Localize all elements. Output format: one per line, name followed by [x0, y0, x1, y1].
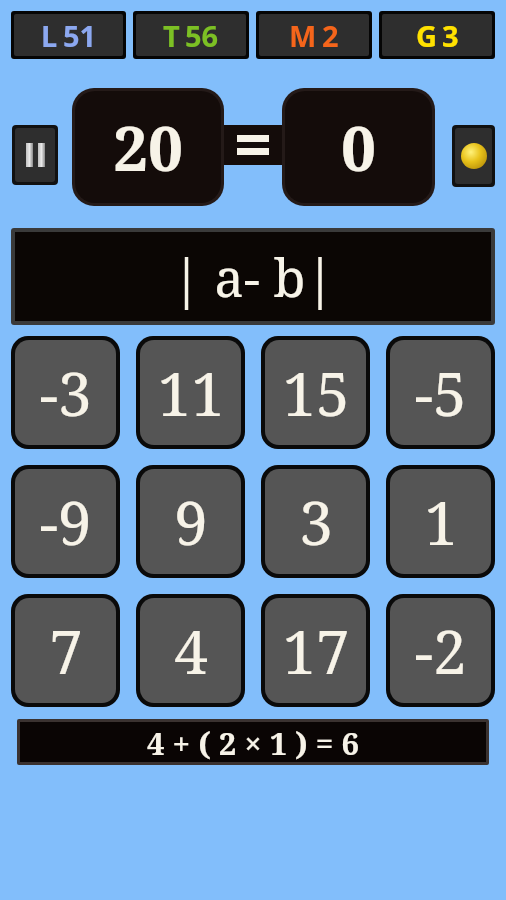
button[interactable]: G	[382, 14, 492, 56]
button[interactable]: 1	[390, 469, 491, 574]
button[interactable]: 4	[140, 598, 241, 703]
staticText: 9	[174, 481, 208, 563]
staticText: T	[163, 16, 180, 55]
button[interactable]: 20	[72, 88, 224, 206]
staticText: -9	[39, 481, 92, 563]
button[interactable]: -5	[390, 340, 491, 445]
staticText: 3	[442, 16, 459, 55]
button[interactable]: 7	[15, 598, 116, 703]
button[interactable]: 9	[140, 469, 241, 574]
button[interactable]: 4 + ( 2 × 1 ) = 6	[20, 722, 486, 762]
button[interactable]: 17	[265, 598, 366, 703]
staticText: -3	[39, 352, 92, 434]
staticText: 2	[322, 16, 339, 55]
staticText: 7	[49, 610, 83, 692]
staticText: | a- b|	[172, 241, 335, 312]
staticText: 56	[185, 16, 219, 55]
staticText: -5	[414, 352, 467, 434]
button[interactable]: Coins	[455, 128, 492, 184]
button[interactable]: 11	[140, 340, 241, 445]
staticText: 20	[113, 105, 184, 189]
staticText: 51	[63, 16, 97, 55]
staticText: M	[289, 16, 317, 55]
button[interactable]: 15	[265, 340, 366, 445]
button[interactable]: -2	[390, 598, 491, 703]
staticText: 3	[299, 481, 333, 563]
button[interactable]: L	[14, 14, 123, 56]
staticText: G	[416, 16, 437, 55]
button[interactable]: -9	[15, 469, 116, 574]
button[interactable]: T	[136, 14, 246, 56]
button[interactable]: 3	[265, 469, 366, 574]
button[interactable]: | a- b|	[15, 232, 491, 321]
button[interactable]: 0	[282, 88, 435, 206]
staticText: 4 + ( 2 × 1 ) = 6	[147, 722, 359, 762]
staticText: 17	[282, 610, 350, 692]
staticText: L	[41, 16, 58, 55]
staticText: 1	[424, 481, 458, 563]
staticText: -2	[414, 610, 467, 692]
staticText: 15	[282, 352, 350, 434]
staticText: 0	[341, 105, 377, 189]
staticText: 11	[157, 352, 225, 434]
button[interactable]: M	[259, 14, 369, 56]
staticText: 4	[174, 610, 208, 692]
button[interactable]: Pause	[15, 128, 55, 182]
button[interactable]: -3	[15, 340, 116, 445]
